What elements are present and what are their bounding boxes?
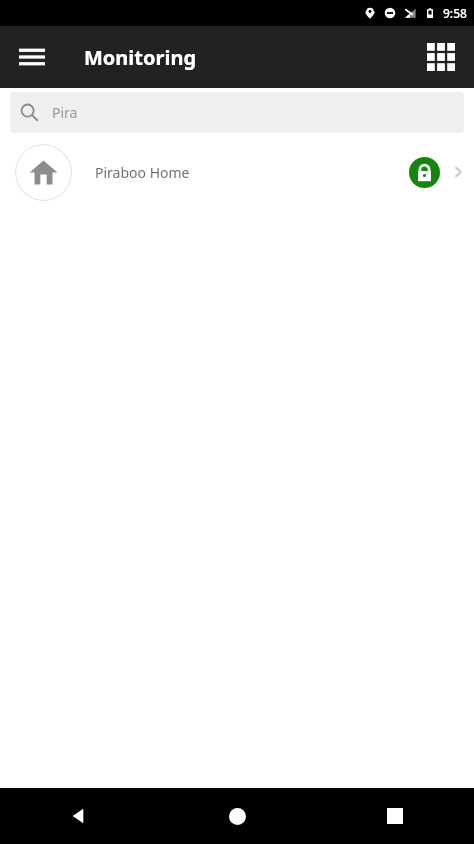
- button[interactable]: Back: [0, 788, 158, 844]
- button[interactable]: Grid view: [415, 31, 467, 83]
- button[interactable]: Open navigation menu: [6, 31, 58, 83]
- button[interactable]: Pira: [10, 92, 464, 133]
- button[interactable]: Home: [158, 788, 316, 844]
- button[interactable]: Locked: [409, 157, 440, 188]
- staticText: Pira: [52, 103, 78, 122]
- button[interactable]: Recent apps: [316, 788, 474, 844]
- staticText: Monitoring: [84, 44, 197, 71]
- button[interactable]: Piraboo Home: [0, 136, 474, 208]
- staticText: Piraboo Home: [95, 163, 190, 182]
- other: Open details: [449, 163, 467, 181]
- staticText: 9:58: [443, 5, 467, 21]
